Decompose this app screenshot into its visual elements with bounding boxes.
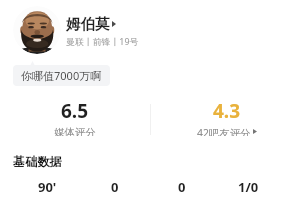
staticText: 42吧友评分 xyxy=(197,126,251,136)
staticText: 曼联丨前锋丨19号 xyxy=(66,35,139,47)
staticText: 媒体评分 xyxy=(54,126,96,136)
button[interactable]: 0 xyxy=(81,178,148,196)
staticText: 4.3 xyxy=(213,98,241,124)
button[interactable]: 4.3 xyxy=(152,98,300,136)
staticText: 90' xyxy=(38,178,57,196)
staticText: 姆伯莫 xyxy=(66,15,110,33)
button[interactable]: 姆伯莫 xyxy=(66,15,116,33)
staticText: 1/0 xyxy=(238,178,259,196)
button[interactable]: 90' xyxy=(14,178,81,196)
button[interactable]: 0 xyxy=(148,178,215,196)
button[interactable]: 姆伯莫 球员头像 xyxy=(13,6,61,54)
staticText: 6.5 xyxy=(61,98,89,124)
staticText: 你哪值7000万啊 xyxy=(21,68,102,83)
button[interactable]: 你哪值7000万啊 xyxy=(13,65,110,86)
button[interactable]: 1/0 xyxy=(215,178,282,196)
button[interactable]: 6.5 xyxy=(0,98,150,136)
staticText: 0 xyxy=(111,178,119,196)
staticText: 0 xyxy=(178,178,186,196)
staticText: 基础数据 xyxy=(13,154,62,169)
